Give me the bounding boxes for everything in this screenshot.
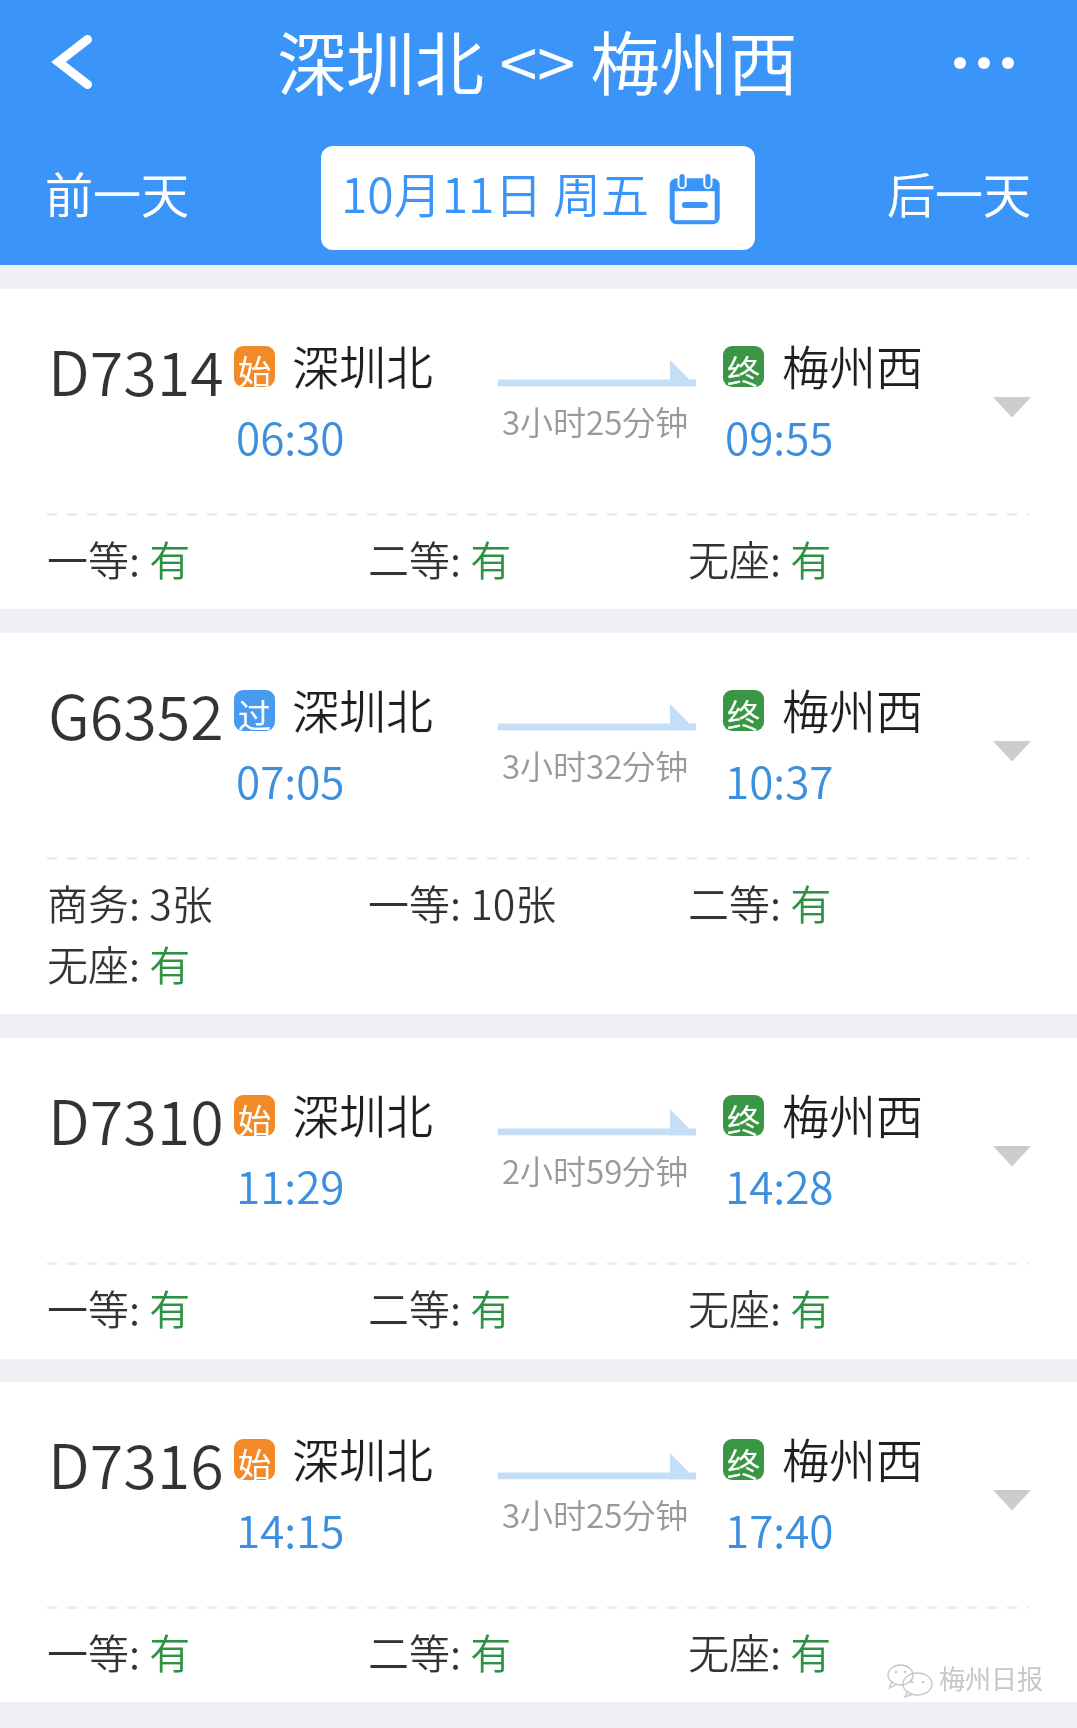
button[interactable]: Show train details — [0, 289, 1077, 609]
staticText: D7316 — [48, 1418, 224, 1506]
staticText: 二等: 有 — [688, 872, 832, 931]
staticText: 14:28 — [725, 1153, 834, 1217]
staticText: 前一天 — [45, 157, 190, 227]
button[interactable]: Show train details — [972, 1126, 1052, 1186]
staticText: D7310 — [48, 1074, 224, 1162]
button[interactable]: Show train details — [972, 377, 1052, 437]
staticText: 深圳北 — [292, 674, 433, 742]
staticText: 商务: 3张 — [47, 872, 213, 931]
staticText: 深圳北 — [292, 1079, 433, 1147]
staticText: 二等: 有 — [368, 1621, 512, 1680]
staticText: 梅州西 — [782, 674, 923, 742]
button[interactable]: More options — [930, 23, 1040, 103]
staticText: 终 — [727, 1439, 760, 1480]
staticText: 无座: 有 — [688, 528, 832, 587]
staticText: 10月11日 周五 — [341, 157, 650, 227]
button[interactable]: 前一天 — [27, 142, 207, 212]
staticText: 梅州西 — [782, 1423, 923, 1491]
button[interactable]: Show train details — [972, 721, 1052, 781]
staticText: 深圳北 — [292, 330, 433, 398]
staticText: 一等: 有 — [47, 1277, 191, 1336]
staticText: 10:37 — [725, 748, 834, 812]
staticText: 06:30 — [236, 404, 345, 468]
button[interactable]: Show train details — [0, 1038, 1077, 1359]
staticText: 二等: 有 — [368, 1277, 512, 1336]
staticText: 14:15 — [236, 1497, 345, 1561]
staticText: 过 — [238, 690, 271, 731]
staticText: 始 — [238, 346, 271, 387]
staticText: 深圳北 <> 梅州西 — [277, 10, 798, 110]
staticText: 3小时25分钟 — [502, 1490, 689, 1538]
staticText: 一等: 10张 — [368, 872, 557, 931]
staticText: G6352 — [48, 669, 224, 757]
staticText: 07:05 — [236, 748, 345, 812]
staticText: 终 — [727, 690, 760, 731]
staticText: 无座: 有 — [688, 1621, 832, 1680]
staticText: 3小时25分钟 — [502, 397, 689, 445]
staticText: 二等: 有 — [368, 528, 512, 587]
button[interactable]: 10月11日 周五 — [321, 146, 755, 250]
staticText: 3小时32分钟 — [502, 741, 689, 789]
staticText: 终 — [727, 1095, 760, 1136]
staticText: 后一天 — [887, 157, 1032, 227]
staticText: 始 — [238, 1439, 271, 1480]
staticText: 09:55 — [725, 404, 834, 468]
staticText: 2小时59分钟 — [502, 1146, 689, 1194]
button[interactable]: Back — [24, 16, 118, 110]
staticText: 终 — [727, 346, 760, 387]
staticText: 无座: 有 — [688, 1277, 832, 1336]
staticText: 11:29 — [236, 1153, 345, 1217]
staticText: 一等: 有 — [47, 528, 191, 587]
button[interactable]: Show train details — [0, 633, 1077, 1014]
staticText: 无座: 有 — [47, 933, 191, 992]
staticText: 深圳北 — [292, 1423, 433, 1491]
staticText: 17:40 — [725, 1497, 834, 1561]
button[interactable]: Show train details — [972, 1470, 1052, 1530]
staticText: D7314 — [48, 325, 224, 413]
button[interactable]: Show train details — [0, 1382, 1077, 1702]
staticText: 始 — [238, 1095, 271, 1136]
staticText: 梅州西 — [782, 1079, 923, 1147]
staticText: 梅州西 — [782, 330, 923, 398]
button[interactable]: 后一天 — [869, 142, 1049, 212]
staticText: 梅州日报 — [939, 1659, 1044, 1697]
staticText: 一等: 有 — [47, 1621, 191, 1680]
